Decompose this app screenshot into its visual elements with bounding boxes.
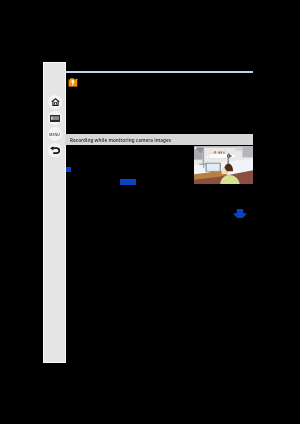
button[interactable]: Home [48, 95, 62, 109]
staticText: MENU [49, 132, 61, 137]
button[interactable]: Scroll down [231, 206, 249, 220]
button[interactable]: Back [48, 143, 62, 157]
button[interactable]: Recording while monitoring camera images [65, 134, 253, 145]
staticText: Recording while monitoring camera images [70, 137, 172, 143]
button[interactable]: Contents [48, 111, 62, 125]
button[interactable]: Menu [48, 127, 62, 141]
